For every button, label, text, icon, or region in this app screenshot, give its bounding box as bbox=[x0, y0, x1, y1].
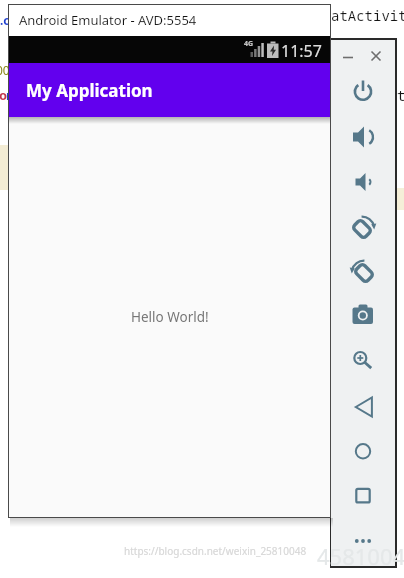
staticText: 45810046 bbox=[317, 541, 404, 571]
staticText: r bbox=[6, 86, 12, 104]
staticText: Android Emulator - AVD:5554 bbox=[19, 11, 197, 29]
staticText: atActivit bbox=[331, 6, 404, 25]
button[interactable] bbox=[345, 433, 381, 469]
staticText: 00 bbox=[0, 62, 10, 78]
button[interactable] bbox=[345, 298, 381, 334]
button[interactable] bbox=[345, 343, 381, 379]
staticText: 11:57 bbox=[281, 40, 322, 62]
staticText: 4G bbox=[244, 39, 254, 49]
button[interactable] bbox=[345, 74, 381, 110]
button[interactable] bbox=[345, 253, 381, 289]
button[interactable] bbox=[339, 48, 357, 66]
button[interactable] bbox=[345, 164, 381, 200]
button[interactable] bbox=[367, 47, 385, 65]
staticText: .c bbox=[0, 12, 10, 28]
staticText: https://blog.csdn.net/weixin_25810048 bbox=[124, 544, 307, 558]
button[interactable] bbox=[345, 523, 381, 559]
button[interactable] bbox=[345, 478, 381, 514]
button[interactable] bbox=[345, 209, 381, 245]
staticText: t bbox=[397, 86, 404, 105]
staticText: My Application bbox=[26, 79, 153, 102]
staticText: o bbox=[0, 86, 8, 104]
button[interactable] bbox=[345, 388, 381, 424]
button[interactable] bbox=[345, 119, 381, 155]
staticText: Hello World! bbox=[131, 308, 209, 326]
